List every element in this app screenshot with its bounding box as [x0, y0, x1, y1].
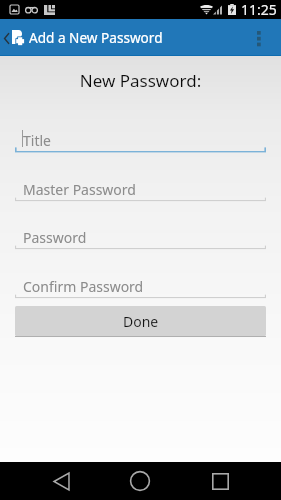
staticText: New Password: [0, 69, 281, 92]
staticText: Add a New Password [29, 28, 163, 47]
button[interactable]: Done [15, 306, 266, 336]
staticText: Done [123, 312, 159, 331]
button[interactable]: Title [15, 124, 266, 172]
button[interactable]: More options [244, 19, 281, 55]
button[interactable]: Back [36, 462, 86, 500]
button[interactable]: Add a New Password [0, 19, 244, 55]
button[interactable]: Confirm Password [15, 270, 266, 318]
button[interactable]: Home [115, 462, 165, 500]
button[interactable]: Master Password [15, 173, 266, 221]
button[interactable]: Recents [195, 462, 245, 500]
staticText: Master Password [23, 180, 136, 199]
staticText: 11:25 [241, 0, 277, 19]
staticText: Confirm Password [23, 277, 144, 296]
button[interactable]: Password [15, 221, 266, 269]
staticText: Title [23, 131, 51, 150]
staticText: Password [23, 228, 87, 247]
